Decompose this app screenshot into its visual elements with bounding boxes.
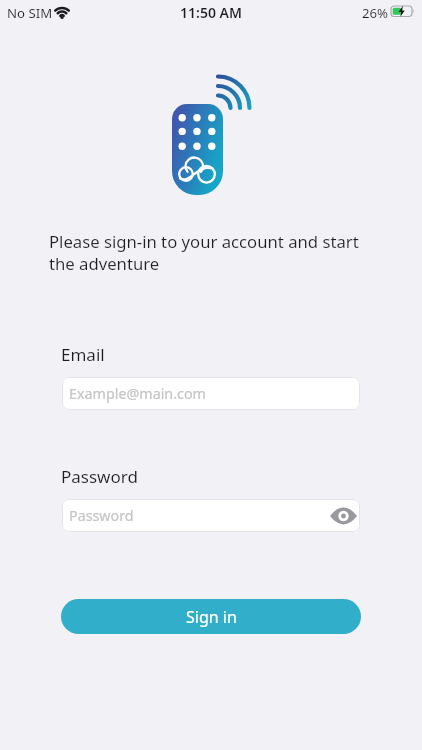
staticText: 26% [362, 4, 389, 22]
button[interactable] [328, 504, 358, 528]
staticText: Email [61, 343, 105, 366]
button[interactable]: Password [62, 499, 360, 532]
staticText: 11:50 AM [180, 3, 242, 22]
staticText: Password [61, 465, 138, 488]
staticText: Example@main.com [69, 384, 206, 403]
staticText: Password [69, 506, 134, 525]
staticText: Sign in [186, 606, 237, 628]
button[interactable]: Example@main.com [62, 377, 360, 410]
button[interactable]: Sign in [61, 599, 361, 634]
staticText: Please sign-in to your account and start… [49, 230, 359, 275]
staticText: No SIM [7, 4, 53, 22]
